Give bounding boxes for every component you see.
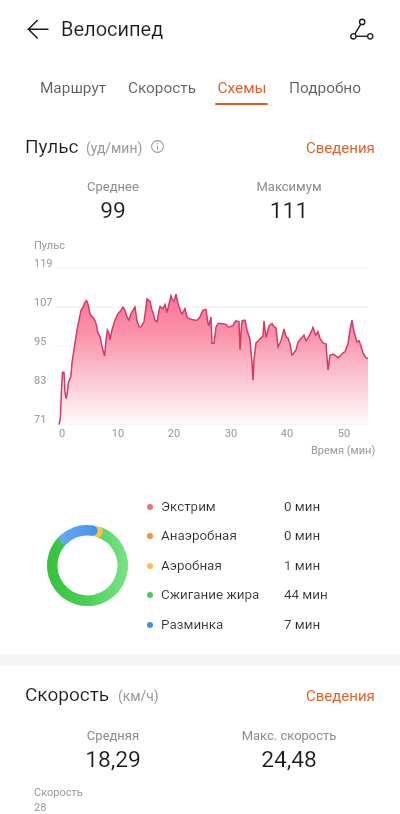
- button[interactable]: Сжигание жира: [140, 581, 360, 609]
- staticText: Сведения: [306, 139, 375, 157]
- button[interactable]: Сведения: [306, 136, 382, 160]
- staticText: Макс. скорость: [209, 728, 369, 743]
- staticText: Разминка: [161, 617, 224, 633]
- button[interactable]: Экстрим: [140, 493, 360, 521]
- staticText: 95: [34, 335, 47, 348]
- button[interactable]: Back: [8, 8, 52, 52]
- button[interactable]: Разминка: [140, 611, 360, 639]
- staticText: Сведения: [306, 687, 375, 705]
- staticText: 24,48: [209, 746, 369, 773]
- staticText: Пульс: [34, 239, 65, 252]
- staticText: Подробно: [279, 79, 371, 97]
- staticText: 83: [34, 374, 47, 387]
- staticText: Скорость: [116, 79, 208, 97]
- staticText: Скорость: [34, 786, 83, 799]
- staticText: 0: [42, 427, 82, 440]
- button[interactable]: Подробно: [279, 79, 371, 109]
- staticText: Анаэробная: [161, 528, 237, 544]
- staticText: Скорость: [25, 683, 110, 705]
- staticText: Максимум: [209, 179, 369, 194]
- staticText: 0 мин: [284, 528, 321, 544]
- staticText: Среднее: [33, 179, 193, 194]
- staticText: 111: [209, 197, 369, 224]
- staticText: 119: [34, 257, 53, 270]
- staticText: 0 мин: [284, 499, 321, 515]
- staticText: 50: [324, 427, 364, 440]
- button[interactable]: Анаэробная: [140, 522, 360, 550]
- staticText: 28: [34, 801, 47, 814]
- staticText: Пульс: [25, 135, 79, 157]
- button[interactable]: Скорость: [116, 79, 208, 109]
- staticText: 71: [34, 413, 47, 426]
- staticText: Велосипед: [61, 17, 164, 40]
- staticText: Время (мин): [311, 444, 376, 457]
- staticText: Сжигание жира: [161, 587, 260, 603]
- staticText: 107: [34, 296, 53, 309]
- staticText: Средняя: [33, 728, 193, 743]
- staticText: 44 мин: [284, 587, 328, 603]
- staticText: 30: [211, 427, 251, 440]
- staticText: (км/ч): [118, 688, 159, 704]
- staticText: 7 мин: [284, 617, 321, 633]
- staticText: 10: [98, 427, 138, 440]
- staticText: 40: [267, 427, 307, 440]
- staticText: Схемы: [196, 79, 288, 97]
- button[interactable]: Share: [340, 7, 384, 51]
- button[interactable]: Маршрут: [27, 79, 119, 109]
- staticText: 1 мин: [284, 558, 321, 574]
- staticText: Маршрут: [27, 79, 119, 97]
- staticText: Аэробная: [161, 558, 222, 574]
- staticText: 99: [33, 197, 193, 224]
- staticText: Экстрим: [161, 499, 216, 515]
- button[interactable]: Аэробная: [140, 552, 360, 580]
- staticText: (уд/мин): [86, 140, 143, 156]
- button[interactable]: Схемы: [196, 79, 288, 109]
- staticText: 20: [154, 427, 194, 440]
- button[interactable]: Сведения: [306, 684, 382, 708]
- staticText: 18,29: [33, 746, 193, 773]
